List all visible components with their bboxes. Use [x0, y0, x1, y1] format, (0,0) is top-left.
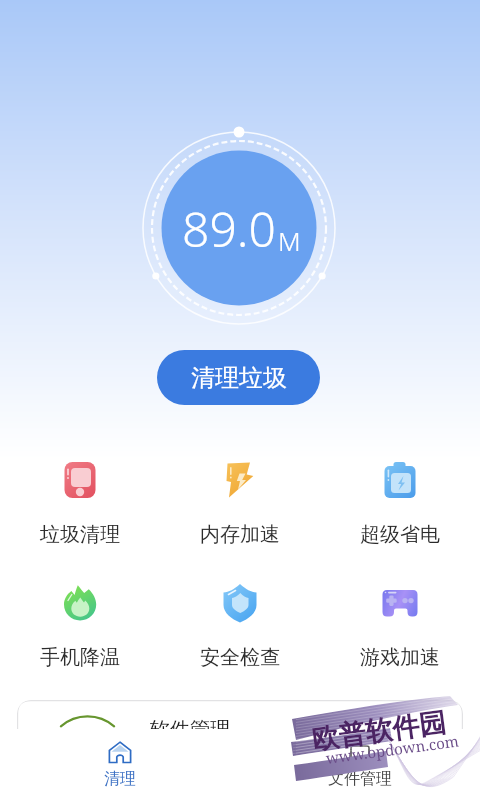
staticText: www.opdown.com — [325, 731, 460, 768]
staticText: 手机降温 — [40, 645, 120, 670]
button[interactable]: 手机降温 — [0, 580, 160, 690]
button[interactable]: 清理 — [0, 729, 240, 800]
button[interactable]: 清理垃圾 — [157, 350, 320, 405]
staticText: M — [278, 223, 301, 258]
staticText: 软件管理 — [150, 717, 230, 740]
staticText: 89.0 — [182, 196, 276, 261]
staticText: 游戏加速 — [360, 645, 440, 670]
staticText: 欧普软件园 — [310, 705, 448, 757]
button[interactable]: 垃圾清理 — [0, 457, 160, 567]
staticText: 安全检查 — [200, 645, 280, 670]
staticText: 文件管理 — [328, 769, 392, 789]
button[interactable]: 超级省电 — [320, 457, 480, 567]
staticText: 垃圾清理 — [40, 522, 120, 547]
button[interactable]: 安全检查 — [160, 580, 320, 690]
button[interactable]: 内存加速 — [160, 457, 320, 567]
button[interactable]: 软件管理 — [17, 700, 463, 740]
staticText: 清理垃圾 — [191, 363, 287, 393]
button[interactable]: 游戏加速 — [320, 580, 480, 690]
staticText: 内存加速 — [200, 522, 280, 547]
staticText: 清理 — [104, 769, 136, 789]
staticText: 超级省电 — [360, 522, 440, 547]
button[interactable]: 文件管理 — [240, 729, 480, 800]
